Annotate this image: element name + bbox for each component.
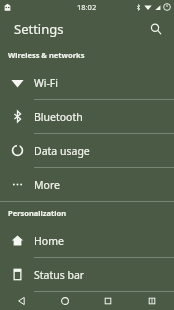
staticText: Settings [14, 20, 64, 38]
button[interactable]: More [0, 168, 174, 201]
button[interactable]: Back [0, 292, 43, 310]
button[interactable]: Split screen [130, 292, 174, 310]
button[interactable]: Data usage [0, 134, 174, 167]
staticText: Bluetooth [34, 110, 83, 124]
staticText: Data usage [34, 144, 90, 158]
staticText: Wireless & networks [8, 50, 85, 60]
staticText: Personalization [8, 208, 67, 218]
button[interactable]: Recents [86, 292, 130, 310]
button[interactable]: Home [0, 224, 174, 257]
staticText: Wi-Fi [34, 76, 59, 90]
staticText: Status bar [34, 268, 85, 282]
button[interactable]: Search [144, 17, 168, 41]
button[interactable]: Status bar [0, 258, 174, 291]
staticText: 18:02 [77, 2, 97, 12]
button[interactable]: Bluetooth [0, 100, 174, 133]
button[interactable]: Wi-Fi [0, 66, 174, 99]
staticText: Home [34, 234, 64, 248]
staticText: More [34, 178, 60, 192]
button[interactable]: Home [43, 292, 86, 310]
